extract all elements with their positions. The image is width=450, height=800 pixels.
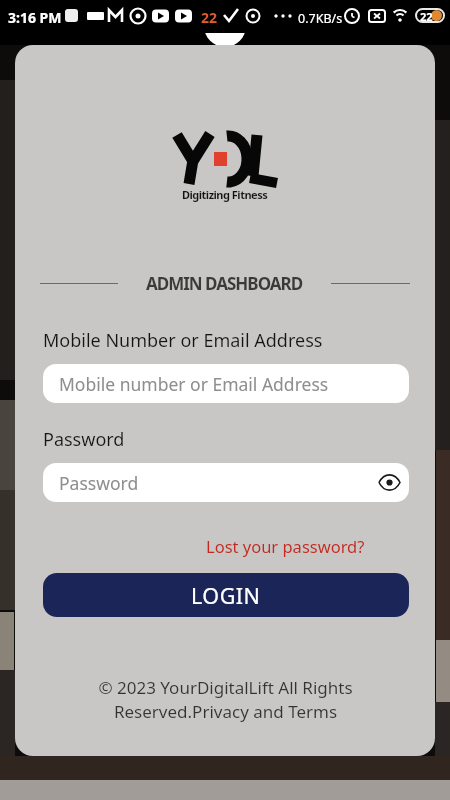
staticText: Digitizing Fitness <box>182 187 268 202</box>
staticText: 0.7KB/s <box>298 10 343 27</box>
staticText: Mobile number or Email Address <box>59 372 329 396</box>
staticText: 22 <box>420 9 433 24</box>
button[interactable]: Password <box>43 463 409 502</box>
button[interactable]: Mobile number or Email Address <box>43 364 409 403</box>
button[interactable]: Lost your password? <box>206 535 365 557</box>
button[interactable]: LOGIN <box>43 573 409 617</box>
staticText: 22 <box>201 8 218 27</box>
staticText: Password <box>59 471 139 495</box>
staticText: Mobile Number or Email Address <box>43 328 323 353</box>
staticText: Password <box>43 427 125 452</box>
staticText: LOGIN <box>191 581 261 610</box>
staticText: 3:16 PM <box>8 8 62 27</box>
staticText: ADMIN DASHBOARD <box>146 272 303 295</box>
staticText: © 2023 YourDigitalLift All Rights Reserv… <box>98 676 353 723</box>
